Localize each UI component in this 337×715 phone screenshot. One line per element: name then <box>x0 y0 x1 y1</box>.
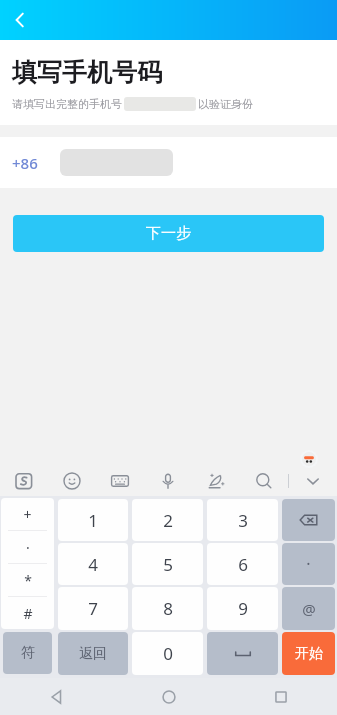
button[interactable]: Emoji <box>48 463 96 499</box>
button[interactable]: 9 <box>207 587 278 630</box>
button[interactable]: Voice input <box>144 463 192 499</box>
button[interactable]: 返回 <box>58 632 128 675</box>
staticText: 5 <box>163 553 173 576</box>
staticText: * <box>24 571 32 590</box>
button[interactable]: Handwriting <box>192 463 240 499</box>
staticText: # <box>23 604 33 623</box>
button[interactable]: Recents <box>225 678 337 715</box>
button[interactable]: Sogou input <box>0 463 48 499</box>
staticText: · <box>26 538 30 557</box>
button[interactable]: 7 <box>58 587 128 630</box>
button[interactable]: Home <box>113 678 225 715</box>
button[interactable]: Back <box>0 0 40 40</box>
button[interactable]: Collapse keyboard <box>289 463 337 499</box>
staticText: @ <box>302 599 316 619</box>
button[interactable]: + <box>1 498 54 530</box>
staticText: 填写手机号码 <box>12 57 162 88</box>
staticText: 3 <box>238 509 248 532</box>
button[interactable]: Space <box>207 632 278 675</box>
staticText: 2 <box>163 509 173 532</box>
button[interactable]: +86 <box>0 137 337 188</box>
button[interactable]: Search <box>240 463 288 499</box>
button[interactable]: Back <box>0 678 113 715</box>
button[interactable]: Backspace <box>282 499 335 541</box>
button[interactable]: 4 <box>58 543 128 585</box>
button[interactable]: 5 <box>132 543 203 585</box>
button[interactable]: · <box>1 531 54 563</box>
button[interactable]: 2 <box>132 499 203 541</box>
staticText: + <box>23 505 32 524</box>
staticText: 以验证身份 <box>198 97 253 111</box>
button[interactable]: 开始 <box>282 632 335 675</box>
staticText: 返回 <box>79 645 107 663</box>
button[interactable]: 6 <box>207 543 278 585</box>
staticText: 1 <box>88 509 98 532</box>
staticText: 4 <box>88 553 98 576</box>
staticText: 6 <box>238 553 248 576</box>
staticText: 0 <box>163 642 173 665</box>
button[interactable]: 符 <box>3 632 52 674</box>
button[interactable]: @ <box>282 587 335 630</box>
staticText: · <box>306 553 311 575</box>
staticText: 下一步 <box>146 224 191 243</box>
button[interactable]: * <box>1 564 54 596</box>
button[interactable]: · <box>282 543 335 585</box>
staticText: 开始 <box>295 645 323 663</box>
button[interactable]: # <box>1 597 54 629</box>
button[interactable]: 下一步 <box>13 215 324 252</box>
button[interactable]: Keyboard <box>96 463 144 499</box>
button[interactable]: 8 <box>132 587 203 630</box>
staticText: 符 <box>21 644 35 662</box>
button[interactable]: 3 <box>207 499 278 541</box>
staticText: +86 <box>12 153 38 173</box>
button[interactable]: Profile <box>300 450 318 468</box>
button[interactable]: 1 <box>58 499 128 541</box>
staticText: 7 <box>88 597 98 620</box>
staticText: 9 <box>238 597 248 620</box>
staticText: 请填写出完整的手机号 <box>12 97 122 111</box>
button[interactable]: 0 <box>132 632 203 675</box>
staticText: 8 <box>163 597 173 620</box>
